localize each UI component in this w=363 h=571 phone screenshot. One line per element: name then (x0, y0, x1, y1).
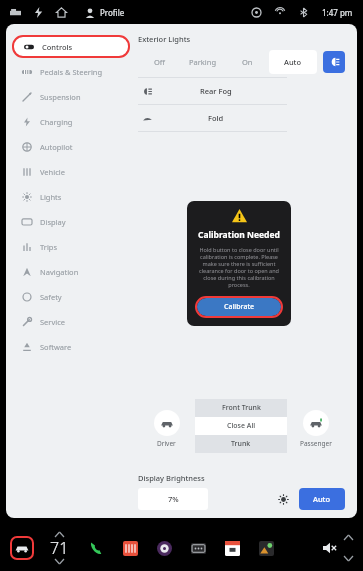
button[interactable]: Brightness (278, 494, 289, 505)
button[interactable]: Trunk (195, 435, 287, 453)
button[interactable]: Rear Fog (138, 78, 287, 104)
staticText: Autopilot (40, 142, 73, 152)
button[interactable]: Profile (85, 7, 125, 18)
button[interactable]: Software (12, 335, 134, 358)
button[interactable]: Close All (195, 417, 287, 435)
staticText: Fold (208, 113, 224, 123)
button[interactable]: Lights (12, 185, 134, 208)
button[interactable]: disc (155, 539, 173, 557)
staticText: Auto (313, 494, 331, 504)
button[interactable]: Volume (343, 535, 353, 561)
button[interactable]: Charging (12, 110, 134, 133)
staticText: Rear Fog (200, 86, 232, 96)
staticText: Display Brightness (138, 473, 205, 483)
staticText: Lights (40, 192, 62, 202)
staticText: Navigation (40, 267, 79, 277)
other: Home (56, 7, 67, 18)
button[interactable]: photos (257, 539, 275, 557)
button[interactable]: Parking (181, 50, 225, 74)
button[interactable]: Front Trunk (195, 399, 287, 417)
other: Bluetooth (299, 8, 308, 17)
other: Charging (33, 7, 44, 18)
staticText: Trunk (231, 439, 251, 449)
button[interactable]: Auto (299, 488, 345, 510)
staticText: Passenger (300, 439, 332, 448)
button[interactable]: Pedals & Steering (12, 60, 134, 83)
button[interactable]: phone (87, 539, 105, 557)
button[interactable]: calendar (223, 539, 241, 557)
button[interactable]: Mute (323, 541, 337, 555)
staticText: Service (40, 317, 66, 327)
button[interactable]: cards (189, 539, 207, 557)
button[interactable]: Navigation (12, 260, 134, 283)
button[interactable]: Suspension (12, 85, 134, 108)
staticText: Front Trunk (222, 403, 261, 413)
button[interactable]: cal1 (121, 539, 139, 557)
button[interactable]: Calibrate (197, 298, 281, 316)
button[interactable]: 71 (50, 532, 69, 564)
staticText: Pedals & Steering (40, 67, 103, 77)
staticText: 71 (50, 537, 69, 559)
staticText: Calibration Needed (198, 229, 280, 241)
staticText: Close All (227, 421, 256, 431)
other: Settings (252, 8, 261, 17)
staticText: Calibrate (224, 302, 255, 312)
staticText: Safety (40, 292, 62, 302)
staticText: Profile (100, 7, 125, 18)
staticText: Vehicle (40, 167, 65, 177)
button[interactable]: Controls (14, 37, 128, 56)
button[interactable]: Fold (138, 105, 287, 131)
staticText: Suspension (40, 92, 81, 102)
button[interactable]: Car controls (10, 536, 34, 560)
staticText: Off (154, 57, 166, 67)
staticText: Driver (157, 439, 176, 448)
staticText: Display (40, 217, 66, 227)
button[interactable]: Trips (12, 235, 134, 258)
staticText: 1:47 pm (322, 7, 353, 18)
button[interactable]: Passenger (287, 410, 345, 448)
staticText: Software (40, 342, 72, 352)
staticText: Exterior Lights (138, 34, 191, 44)
button[interactable]: Off (138, 50, 181, 74)
other: Wifi (275, 7, 285, 17)
staticText: Trips (40, 242, 58, 252)
staticText: Parking (189, 57, 217, 67)
staticText: On (242, 57, 253, 67)
button[interactable]: Auto (269, 50, 317, 74)
button[interactable]: Vehicle (12, 160, 134, 183)
button[interactable]: On (225, 50, 269, 74)
staticText: Auto (284, 57, 302, 67)
staticText: Hold button to close door until calibrat… (195, 246, 283, 288)
staticText: 7% (168, 494, 179, 504)
button[interactable]: Autopilot (12, 135, 134, 158)
button[interactable]: Display (12, 210, 134, 233)
button[interactable]: Headlights (323, 51, 345, 73)
button[interactable]: Service (12, 310, 134, 333)
button[interactable]: Driver (138, 410, 195, 448)
staticText: Controls (42, 42, 73, 52)
button[interactable]: 7% (138, 488, 208, 510)
staticText: Charging (40, 117, 73, 127)
other: Car (10, 7, 21, 18)
button[interactable]: Safety (12, 285, 134, 308)
